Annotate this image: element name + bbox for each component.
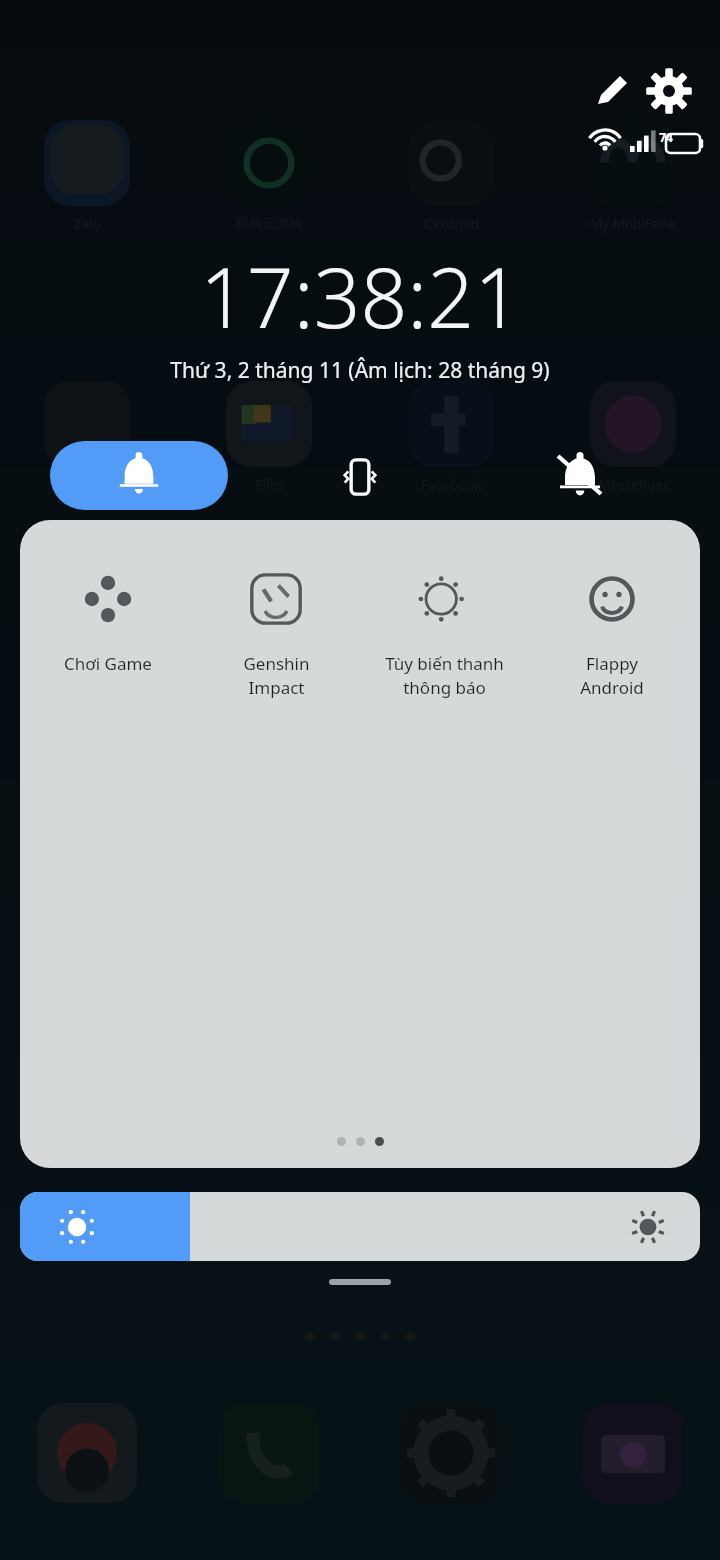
- staticText: 网易云游戏: [235, 215, 303, 232]
- staticText: 17:38:21: [200, 240, 521, 352]
- button[interactable]: Flappy Android: [532, 564, 692, 703]
- button[interactable]: Genshin Impact: [196, 564, 356, 703]
- staticText: Messenger: [598, 476, 669, 494]
- staticText: Dịch: [437, 1151, 466, 1169]
- button[interactable]: Chơi Game: [28, 564, 188, 679]
- staticText: Flappy Android: [580, 652, 644, 699]
- button[interactable]: Settings: [644, 66, 694, 116]
- staticText: Chơi Game: [64, 652, 152, 675]
- button[interactable]: Tùy biến thanh thông báo: [364, 564, 524, 703]
- staticText: 74: [648, 129, 684, 145]
- staticText: Tùy biến thanh thông báo: [385, 652, 504, 699]
- button[interactable]: Ring: [50, 441, 228, 510]
- button[interactable]: Edit: [588, 66, 638, 116]
- staticText: Genshin Impact: [243, 652, 310, 699]
- staticText: ZArchiver: [57, 1151, 118, 1169]
- button[interactable]: Brightness: [20, 1192, 700, 1261]
- staticText: Cxxdroid: [423, 215, 480, 233]
- staticText: Zalo: [74, 215, 101, 233]
- button[interactable]: Vibrate: [325, 442, 395, 512]
- staticText: Thứ 3, 2 tháng 11 (Âm lịch: 28 tháng 9): [170, 356, 550, 385]
- staticText: Tile Shortcuts: [590, 1151, 677, 1169]
- staticText: Facebook: [421, 476, 482, 494]
- staticText: Files: [255, 476, 284, 494]
- staticText: My MobiFone: [590, 215, 676, 233]
- staticText: Tin nhắn: [241, 1151, 297, 1169]
- button[interactable]: Mute: [545, 442, 615, 512]
